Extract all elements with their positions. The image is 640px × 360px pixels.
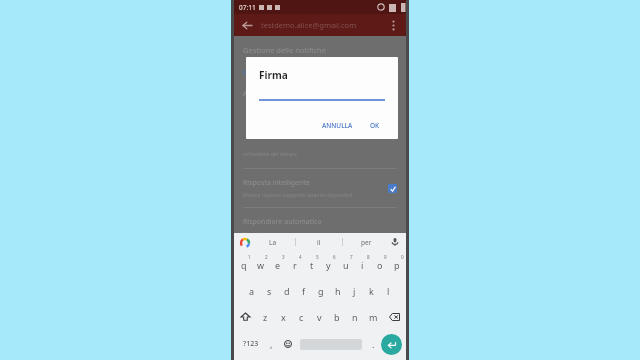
staticText: Mostra risposte suggerite quando disponi… [243, 191, 353, 198]
staticText: 8 [367, 254, 370, 260]
staticText: per [361, 238, 372, 247]
staticText: richiedere del tempo [243, 150, 297, 157]
button[interactable]: 5 [303, 251, 320, 278]
button[interactable]: f [295, 278, 312, 304]
button[interactable]: Enter [381, 334, 402, 355]
button[interactable]: Shift [234, 304, 257, 330]
button[interactable]: l [380, 278, 397, 304]
button[interactable]: a [243, 278, 261, 304]
staticText: Rispondiore automatico [243, 217, 322, 227]
button[interactable]: s [261, 278, 278, 304]
button[interactable]: j [346, 278, 363, 304]
staticText: a [249, 285, 255, 297]
button[interactable]: Voice input [389, 236, 401, 248]
button[interactable]: il [296, 233, 342, 251]
button[interactable]: 3 [269, 251, 286, 278]
staticText: 07:11 [239, 3, 256, 12]
button[interactable]: OK [365, 117, 385, 134]
button[interactable]: Backspace [382, 304, 406, 330]
button[interactable]: n [346, 304, 364, 330]
button[interactable]: More options [386, 18, 400, 32]
staticText: il [317, 238, 321, 247]
staticText: g [318, 285, 324, 297]
staticText: 2 [265, 254, 268, 260]
staticText: o [377, 259, 383, 271]
button[interactable]: h [329, 278, 346, 304]
button[interactable]: 9 [371, 251, 388, 278]
staticText: 5 [316, 254, 319, 260]
staticText: 3 [282, 254, 285, 260]
staticText: La [269, 238, 277, 247]
staticText: 4 [299, 254, 302, 260]
staticText: Aggiungere firma alle email inviate [243, 88, 366, 98]
staticText: h [335, 285, 341, 297]
button[interactable]: z [257, 304, 274, 330]
staticText: c [299, 311, 304, 323]
staticText: testdemo.alice@gmail.com [261, 20, 357, 30]
staticText: Generali [243, 68, 270, 77]
staticText: v [317, 311, 322, 323]
button[interactable]: 8 [354, 251, 371, 278]
staticText: e [275, 259, 281, 271]
staticText: , [270, 338, 273, 350]
staticText: . [372, 338, 375, 350]
staticText: 9 [384, 254, 387, 260]
button[interactable]: g [312, 278, 329, 304]
button[interactable]: m [364, 304, 382, 330]
staticText: w [257, 259, 265, 271]
button[interactable]: ANNULLA [317, 117, 358, 134]
staticText: q [241, 259, 247, 271]
button[interactable]: 1 [235, 251, 252, 278]
staticText: l [387, 285, 390, 297]
button[interactable]: . [366, 330, 381, 358]
staticText: ?123 [243, 339, 259, 349]
button[interactable]: 0 [388, 251, 405, 278]
staticText: 7 [350, 254, 353, 260]
staticText: t [310, 259, 314, 271]
staticText: ANNULLA [322, 121, 353, 130]
staticText: s [267, 285, 272, 297]
staticText: m [369, 311, 378, 323]
staticText: b [334, 311, 340, 323]
staticText: u [343, 259, 349, 271]
staticText: Firma [259, 68, 288, 82]
button[interactable]: La [250, 233, 295, 251]
button[interactable]: Emoji [279, 330, 296, 358]
button[interactable]: c [292, 304, 310, 330]
staticText: p [394, 259, 400, 271]
button[interactable]: k [363, 278, 380, 304]
button[interactable]: v [310, 304, 328, 330]
staticText: 0 [401, 254, 404, 260]
staticText: x [281, 311, 286, 323]
staticText: Risposta intelligente [243, 178, 310, 188]
button[interactable]: , [264, 330, 279, 358]
staticText: 6 [333, 254, 336, 260]
staticText: r [293, 259, 297, 271]
staticText: n [352, 311, 358, 323]
button[interactable]: d [278, 278, 295, 304]
staticText: Gestione delle notifiche [243, 45, 326, 55]
button[interactable]: per [343, 233, 389, 251]
staticText: y [326, 259, 331, 271]
staticText: f [302, 285, 306, 297]
button[interactable]: 2 [252, 251, 269, 278]
button[interactable]: Back [240, 18, 255, 33]
button[interactable]: ?123 [238, 330, 264, 358]
staticText: j [353, 285, 356, 297]
staticText: z [263, 311, 268, 323]
button[interactable]: x [274, 304, 292, 330]
staticText: i [361, 259, 364, 271]
button[interactable]: 6 [320, 251, 337, 278]
button[interactable]: b [328, 304, 346, 330]
staticText: OK [370, 121, 380, 130]
button[interactable]: 4 [286, 251, 303, 278]
button[interactable]: Smart reply toggle [388, 184, 397, 193]
staticText: k [369, 285, 374, 297]
staticText: d [284, 285, 290, 297]
button[interactable]: 7 [337, 251, 354, 278]
button[interactable]: Google [239, 237, 250, 248]
staticText: 1 [248, 254, 251, 260]
